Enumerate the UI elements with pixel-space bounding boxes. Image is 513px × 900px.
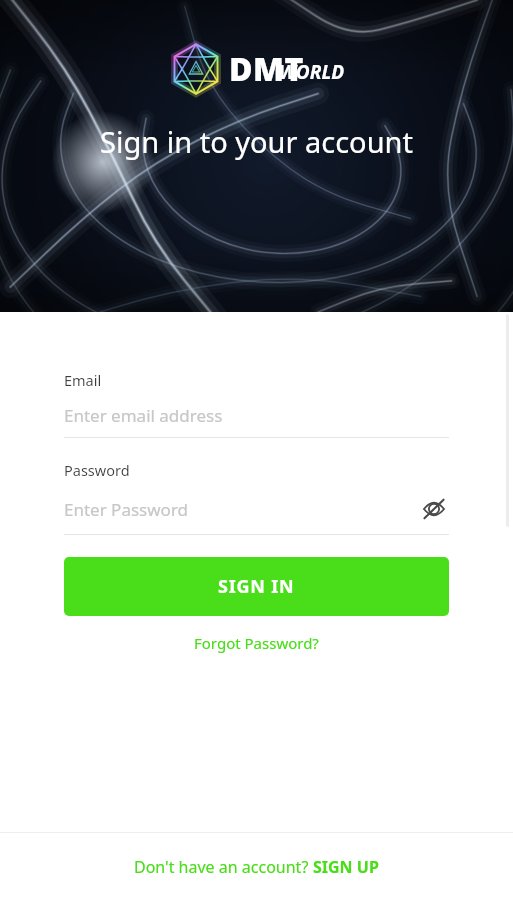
staticText: DMT bbox=[229, 47, 304, 91]
button[interactable]: Enter Password bbox=[64, 494, 449, 524]
button[interactable]: Don't have an account? bbox=[0, 833, 513, 900]
staticText: Password bbox=[64, 460, 130, 480]
staticText: Enter Password bbox=[64, 498, 419, 521]
staticText: Email bbox=[64, 370, 102, 390]
staticText: Don't have an account? bbox=[134, 856, 313, 878]
button[interactable]: Forgot Password? bbox=[188, 630, 325, 656]
button[interactable]: Enter email address bbox=[64, 404, 449, 427]
staticText: Sign in to your account bbox=[100, 122, 413, 161]
staticText: WORLD bbox=[279, 59, 345, 85]
staticText: SIGN IN bbox=[218, 574, 295, 599]
staticText: Forgot Password? bbox=[194, 633, 319, 653]
staticText: SIGN UP bbox=[313, 856, 379, 878]
staticText: Enter email address bbox=[64, 404, 449, 427]
button[interactable]: SIGN IN bbox=[64, 557, 449, 616]
button[interactable]: Show password bbox=[419, 494, 449, 524]
